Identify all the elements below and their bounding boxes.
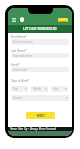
staticText: Enter last name bbox=[13, 54, 33, 58]
button[interactable]: App logo bbox=[19, 16, 25, 22]
staticText: Day bbox=[13, 87, 18, 91]
staticText: Email* bbox=[11, 63, 20, 67]
staticText: LET'S GET INTRODUCED bbox=[23, 27, 57, 31]
staticText: LOGIN bbox=[59, 19, 67, 22]
staticText: First Name* bbox=[11, 35, 27, 39]
button[interactable]: Gender bbox=[11, 95, 69, 101]
button[interactable]: Enter last name bbox=[11, 53, 69, 58]
staticText: Year bbox=[53, 87, 59, 91]
staticText: NEXT bbox=[37, 114, 45, 118]
button[interactable]: Menu bbox=[11, 17, 17, 23]
staticText: Enter first name bbox=[13, 40, 33, 44]
staticText: Last Name* bbox=[11, 49, 27, 53]
button[interactable]: Month bbox=[31, 86, 48, 92]
staticText: Enter email bbox=[13, 68, 27, 72]
button[interactable]: Enter email bbox=[11, 67, 69, 72]
button[interactable]: Enter first name bbox=[11, 39, 69, 45]
staticText: Date of Birth* bbox=[11, 79, 30, 83]
button[interactable]: Year bbox=[51, 86, 68, 92]
button[interactable]: LOGIN bbox=[58, 18, 68, 22]
staticText: Never Give Up • Always Move Forward bbox=[10, 127, 57, 131]
button[interactable]: NEXT bbox=[26, 112, 55, 119]
staticText: Gender bbox=[13, 96, 23, 100]
button[interactable]: Day bbox=[11, 86, 28, 92]
staticText: Month bbox=[33, 87, 42, 91]
